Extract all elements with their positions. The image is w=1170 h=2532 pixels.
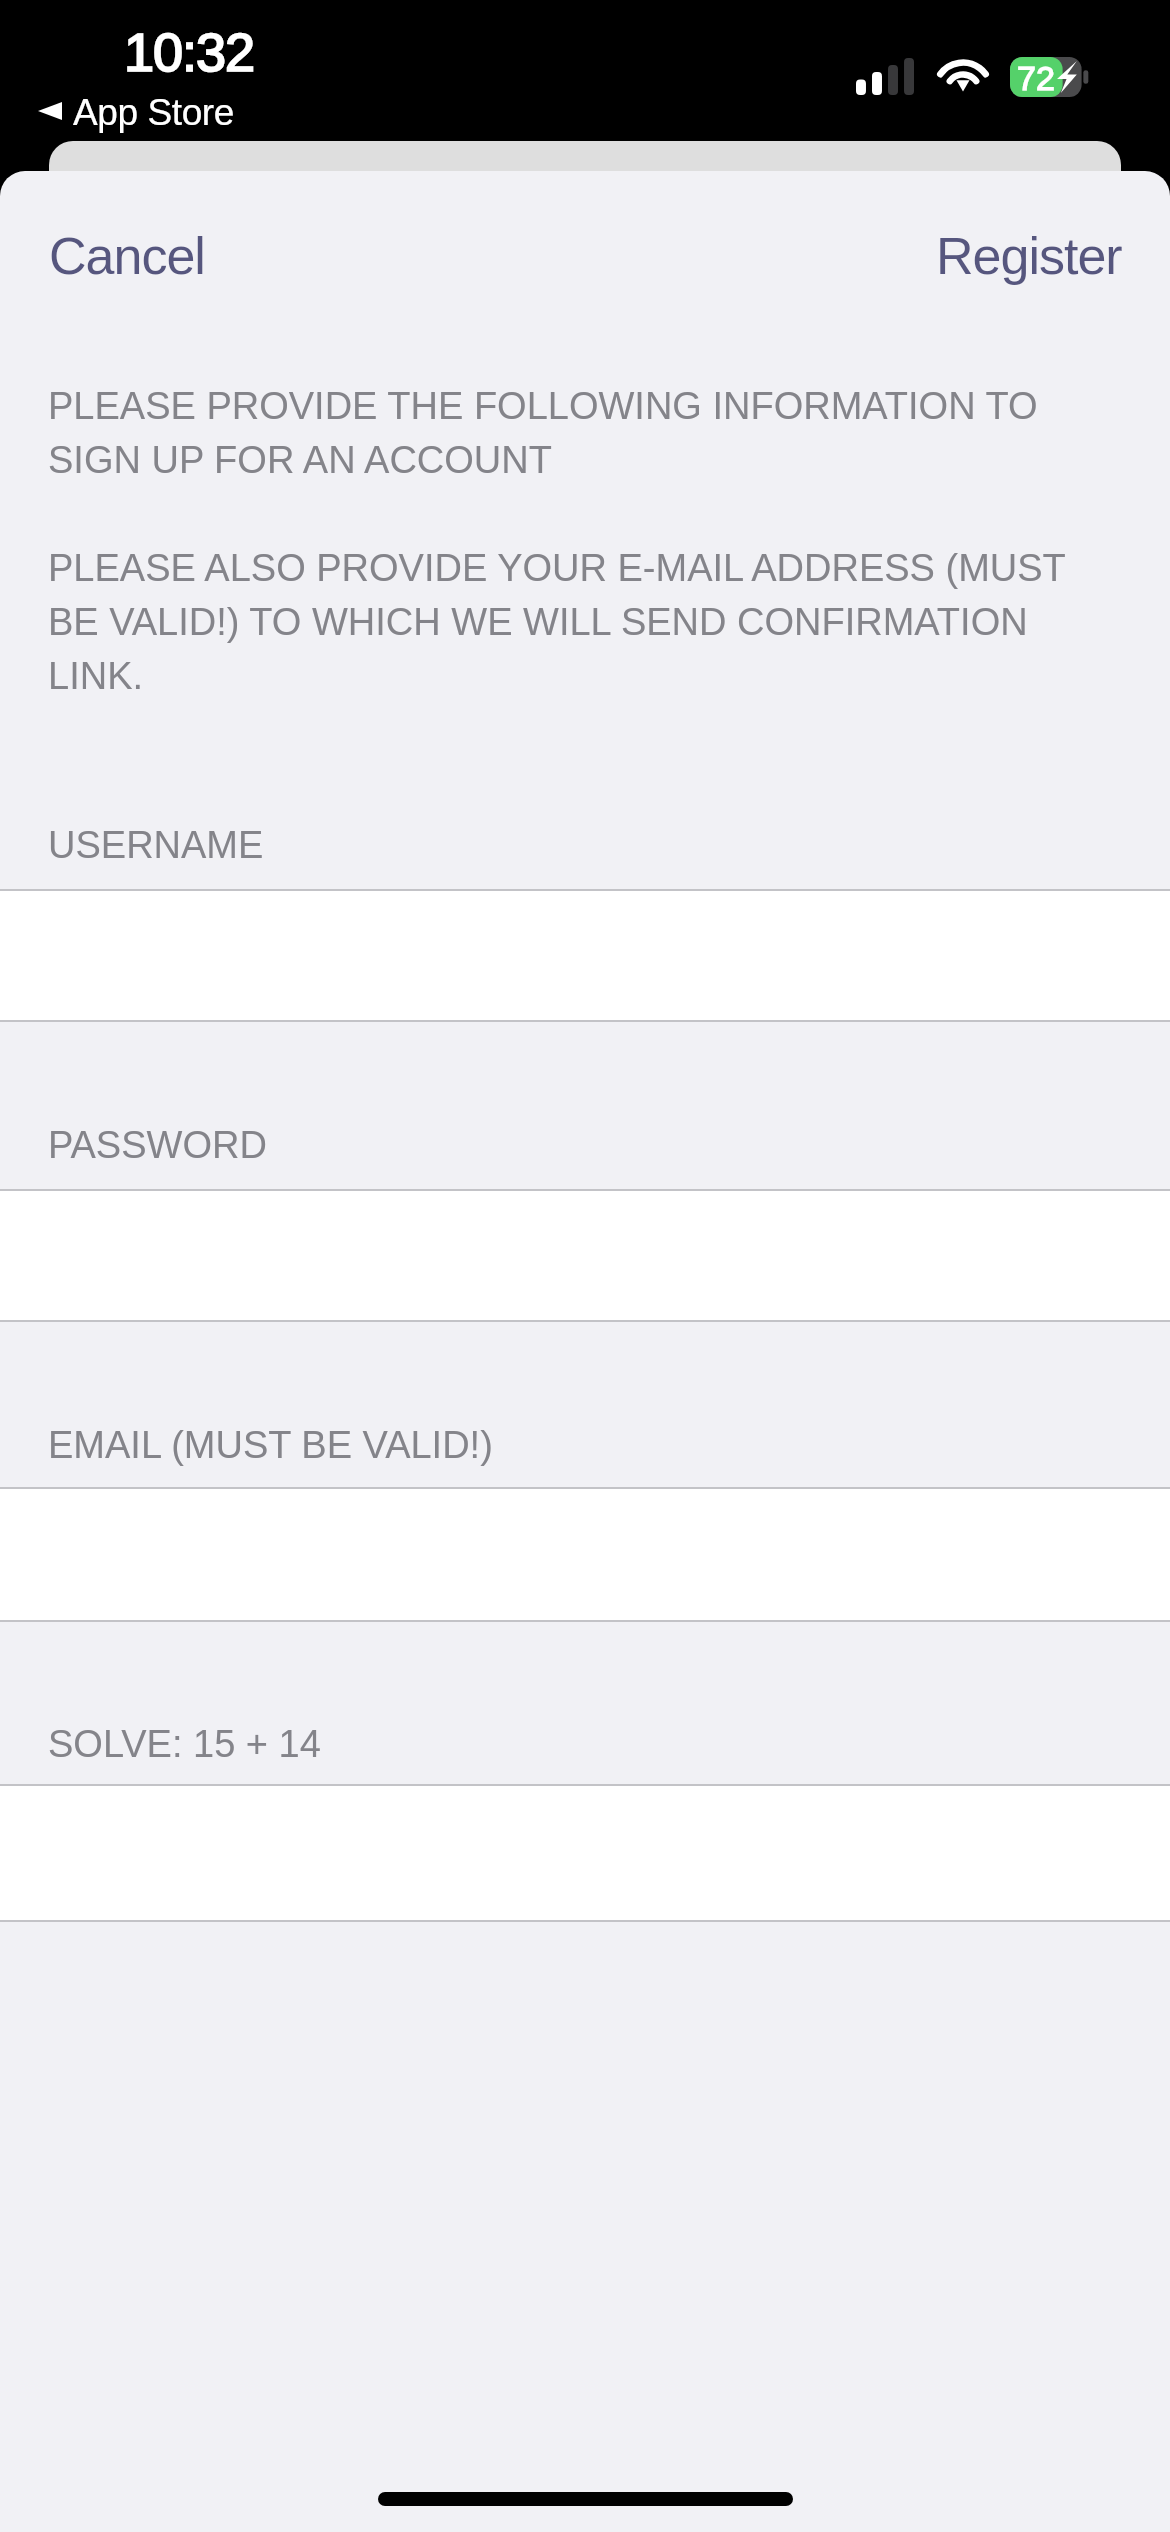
staticText: 10:32	[124, 22, 255, 82]
staticText: Register	[936, 227, 1122, 285]
staticText: 72	[1017, 59, 1055, 97]
button[interactable]: Cancel	[0, 213, 251, 299]
button[interactable]: Register	[890, 213, 1170, 299]
button[interactable]: Back to App Store	[38, 92, 234, 133]
button[interactable]: PASSWORD	[0, 1022, 1170, 1189]
button[interactable]: SOLVE: 15 + 14	[0, 1622, 1170, 1784]
staticText: USERNAME	[48, 824, 264, 866]
staticText: App Store	[73, 92, 234, 133]
staticText: SOLVE: 15 + 14	[48, 1723, 321, 1765]
staticText: EMAIL (MUST BE VALID!)	[48, 1424, 493, 1466]
staticText: Cancel	[49, 227, 205, 285]
button[interactable]: EMAIL (MUST BE VALID!)	[0, 1322, 1170, 1487]
button[interactable]: USERNAME	[0, 720, 1170, 889]
staticText: PLEASE PROVIDE THE FOLLOWING INFORMATION…	[48, 385, 1121, 697]
staticText: PASSWORD	[48, 1124, 267, 1166]
